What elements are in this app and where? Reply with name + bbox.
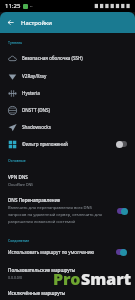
staticText: Hysteria — [22, 90, 40, 96]
staticText: Основные — [8, 158, 26, 163]
button[interactable]: VPN DNS — [0, 172, 135, 189]
staticText: Фильтр приложений — [22, 141, 68, 147]
button[interactable]: Hysteria — [0, 84, 135, 101]
staticText: DNSTT (DNS) — [22, 107, 50, 113]
button[interactable]: Безопасная оболочка (SSH) — [0, 49, 135, 66]
staticText: V2Ray/Xray — [22, 73, 47, 79]
button[interactable]: DNSTT (DNS) — [0, 101, 135, 118]
staticText: Shadowsocks — [22, 124, 51, 130]
staticText: 11:25 — [5, 2, 21, 10]
staticText: 0.0.0.0/0 — [8, 275, 23, 280]
button[interactable]: Исключённые маршруты — [0, 288, 135, 298]
staticText: Smart — [81, 268, 132, 290]
button[interactable]: Пользовательские маршруты — [0, 265, 135, 282]
staticText: Пользовательские маршруты — [8, 267, 76, 273]
staticText: Pro — [53, 268, 81, 290]
staticText: Cloudflare DNS — [8, 182, 34, 187]
staticText: Безопасная оболочка (SSH) — [22, 55, 83, 61]
staticText: Туннель — [8, 40, 23, 45]
button[interactable]: DNS Перенаправление — [0, 195, 135, 227]
button[interactable]: Shadowsocks — [0, 118, 135, 135]
staticText: DNS Перенаправление — [8, 197, 61, 203]
staticText: Включить для перенаправления всех DNS за… — [8, 205, 106, 225]
staticText: ·· — [30, 3, 33, 10]
staticText: Исключённые маршруты — [8, 290, 66, 296]
button[interactable]: V2Ray/Xray — [0, 67, 135, 84]
staticText: Соединение — [8, 238, 30, 243]
staticText: Использовать маршрут по умолчанию — [8, 249, 114, 255]
button[interactable]: Использовать маршрут по умолчанию — [0, 245, 135, 259]
staticText: Настройки — [21, 19, 52, 27]
button[interactable]: Назад — [4, 16, 17, 29]
staticText: VPN DNS — [8, 174, 28, 180]
button[interactable]: Фильтр приложений — [0, 135, 135, 152]
